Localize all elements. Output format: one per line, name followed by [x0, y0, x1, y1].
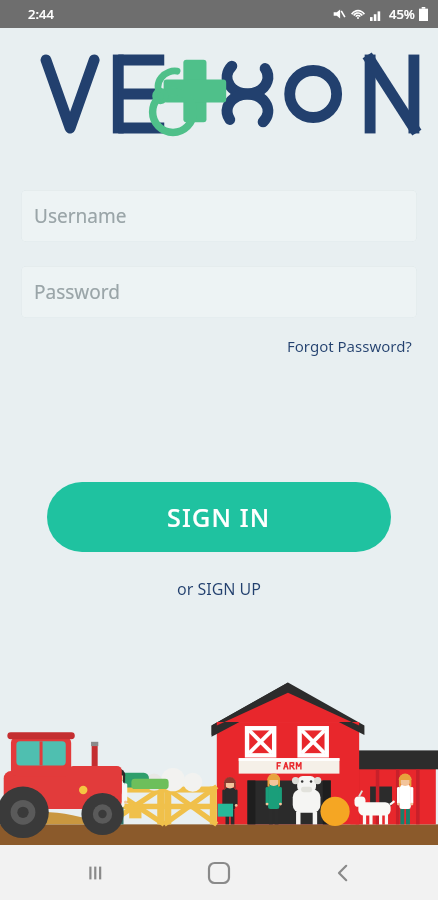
- button[interactable]: or SIGN UP: [171, 574, 268, 604]
- staticText: or SIGN UP: [177, 578, 262, 600]
- button[interactable]: Password: [21, 266, 417, 318]
- button[interactable]: Back: [315, 845, 371, 900]
- button[interactable]: Username: [21, 190, 417, 242]
- button[interactable]: SIGN IN: [47, 482, 391, 552]
- staticText: 2:44: [28, 5, 54, 23]
- staticText: Forgot Password?: [287, 336, 412, 356]
- button[interactable]: Recent apps: [68, 845, 124, 900]
- staticText: Password: [34, 279, 120, 305]
- staticText: SIGN IN: [167, 500, 271, 534]
- staticText: 45%: [389, 5, 415, 23]
- staticText: Username: [34, 203, 127, 229]
- button[interactable]: Forgot Password?: [283, 332, 416, 360]
- button[interactable]: Home: [191, 845, 247, 900]
